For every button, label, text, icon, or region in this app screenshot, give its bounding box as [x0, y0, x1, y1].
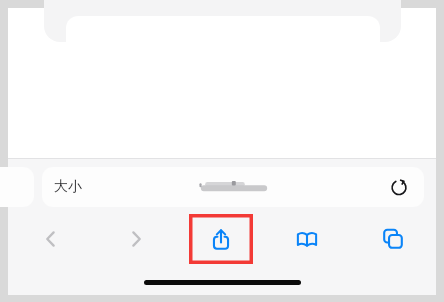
- button[interactable]: 大小: [42, 167, 424, 207]
- button[interactable]: Bookmarks: [264, 213, 350, 265]
- staticText: 大小: [54, 178, 82, 196]
- button[interactable]: Reload: [386, 174, 412, 200]
- button[interactable]: Forward: [93, 213, 178, 265]
- button[interactable]: Share: [189, 214, 253, 264]
- button[interactable]: Back: [8, 213, 93, 265]
- button[interactable]: Tabs: [350, 213, 436, 265]
